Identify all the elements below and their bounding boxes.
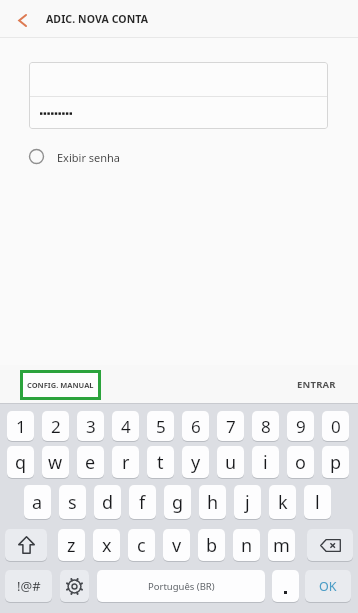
staticText: s bbox=[68, 490, 77, 515]
staticText: x bbox=[102, 533, 112, 558]
button[interactable]: h bbox=[199, 485, 226, 519]
button[interactable]: g bbox=[164, 485, 191, 519]
staticText: b bbox=[206, 533, 218, 558]
button[interactable] bbox=[272, 570, 299, 602]
button[interactable] bbox=[307, 529, 353, 561]
button[interactable]: 5 bbox=[147, 411, 174, 441]
staticText: CONFIG. MANUAL bbox=[27, 380, 94, 390]
button[interactable]: 9 bbox=[287, 411, 314, 441]
button[interactable]: ENTRAR bbox=[285, 365, 347, 403]
staticText: y bbox=[191, 450, 201, 475]
button[interactable]: j bbox=[234, 485, 261, 519]
button[interactable]: 4 bbox=[112, 411, 139, 441]
staticText: v bbox=[172, 533, 182, 558]
button[interactable]: CONFIG. MANUAL bbox=[20, 370, 101, 400]
staticText: 7 bbox=[226, 415, 236, 438]
staticText: m bbox=[273, 533, 290, 558]
staticText: 9 bbox=[296, 415, 306, 438]
staticText: i bbox=[263, 450, 268, 475]
staticText: z bbox=[67, 533, 76, 558]
button[interactable]: o bbox=[287, 446, 314, 478]
staticText: t bbox=[157, 450, 164, 475]
button[interactable]: Exibir senha bbox=[18, 142, 168, 172]
staticText: e bbox=[85, 450, 96, 475]
button[interactable]: a bbox=[24, 485, 51, 519]
button[interactable]: OK bbox=[305, 570, 351, 602]
staticText: l bbox=[315, 490, 320, 515]
staticText: n bbox=[241, 533, 253, 558]
staticText: q bbox=[15, 450, 27, 475]
staticText: 0 bbox=[331, 415, 341, 438]
staticText: 4 bbox=[121, 415, 131, 438]
button[interactable]: r bbox=[112, 446, 139, 478]
button[interactable]: t bbox=[147, 446, 174, 478]
staticText: 6 bbox=[191, 415, 201, 438]
staticText: r bbox=[122, 450, 130, 475]
button[interactable]: l bbox=[304, 485, 331, 519]
button[interactable]: x bbox=[93, 529, 120, 561]
button[interactable]: 8 bbox=[252, 411, 279, 441]
button[interactable]: 7 bbox=[217, 411, 244, 441]
staticText: OK bbox=[319, 578, 337, 595]
staticText: d bbox=[102, 490, 114, 515]
button[interactable]: y bbox=[182, 446, 209, 478]
staticText: 2 bbox=[51, 415, 61, 438]
button[interactable] bbox=[8, 6, 36, 34]
staticText: p bbox=[330, 450, 342, 475]
staticText: f bbox=[139, 490, 146, 515]
staticText: u bbox=[225, 450, 237, 475]
button[interactable]: !@# bbox=[5, 570, 52, 602]
staticText: 8 bbox=[261, 415, 271, 438]
button[interactable]: k bbox=[269, 485, 296, 519]
button[interactable]: i bbox=[252, 446, 279, 478]
staticText: o bbox=[295, 450, 306, 475]
staticText: 1 bbox=[16, 415, 26, 438]
button[interactable]: d bbox=[94, 485, 121, 519]
button[interactable]: m bbox=[268, 529, 295, 561]
staticText: Exibir senha bbox=[57, 150, 121, 165]
staticText: ENTRAR bbox=[297, 378, 336, 391]
button[interactable]: f bbox=[129, 485, 156, 519]
button[interactable]: s bbox=[59, 485, 86, 519]
button[interactable] bbox=[60, 570, 89, 602]
button[interactable]: 1 bbox=[7, 411, 34, 441]
button[interactable]: 0 bbox=[322, 411, 349, 441]
button[interactable]: w bbox=[42, 446, 69, 478]
staticText: 5 bbox=[156, 415, 166, 438]
button[interactable]: u bbox=[217, 446, 244, 478]
button[interactable]: e bbox=[77, 446, 104, 478]
staticText: c bbox=[137, 533, 146, 558]
staticText: ADIC. NOVA CONTA bbox=[46, 12, 149, 26]
button[interactable]: n bbox=[233, 529, 260, 561]
button[interactable]: b bbox=[198, 529, 225, 561]
staticText: j bbox=[245, 490, 250, 515]
button[interactable]: 2 bbox=[42, 411, 69, 441]
staticText: h bbox=[207, 490, 219, 515]
button[interactable]: 6 bbox=[182, 411, 209, 441]
staticText: 3 bbox=[86, 415, 96, 438]
button[interactable]: z bbox=[58, 529, 85, 561]
button[interactable]: p bbox=[322, 446, 349, 478]
button[interactable]: Português (BR) bbox=[97, 570, 265, 602]
staticText: g bbox=[172, 490, 184, 515]
staticText: w bbox=[48, 450, 63, 475]
button[interactable]: c bbox=[128, 529, 155, 561]
button[interactable]: 3 bbox=[77, 411, 104, 441]
button[interactable]: q bbox=[7, 446, 34, 478]
staticText: Português (BR) bbox=[148, 580, 215, 593]
staticText: k bbox=[278, 490, 288, 515]
staticText: a bbox=[32, 490, 43, 515]
staticText: !@# bbox=[17, 577, 41, 595]
button[interactable] bbox=[5, 529, 47, 561]
button[interactable]: v bbox=[163, 529, 190, 561]
